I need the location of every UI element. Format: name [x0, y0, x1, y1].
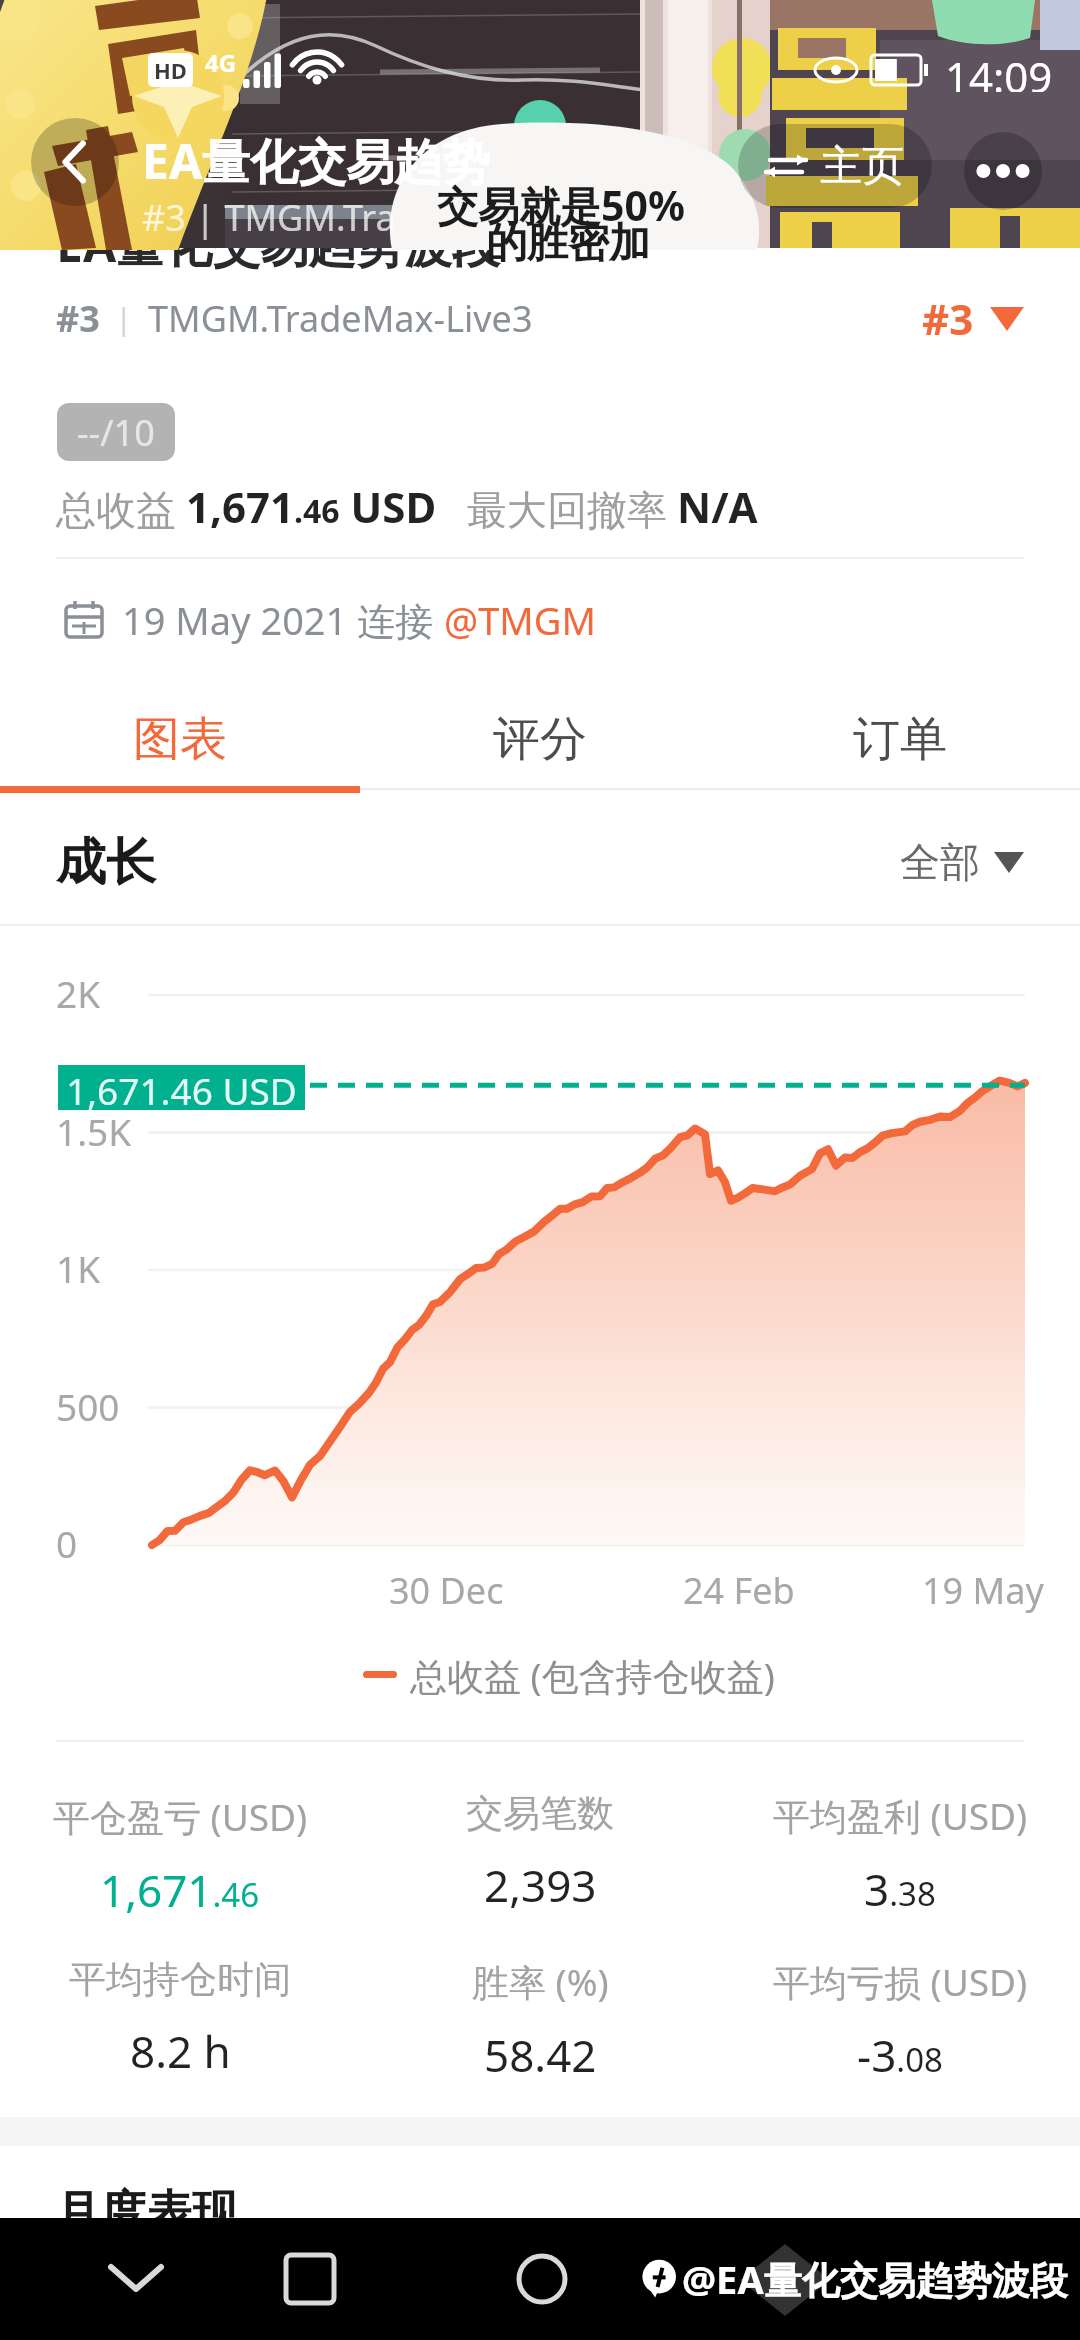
staticText: 平仓盈亏 (USD): [53, 1791, 308, 1842]
staticText: 平均持仓时间: [69, 1956, 291, 2003]
staticText: 2,393: [484, 1855, 597, 1915]
staticText: 平均盈利 (USD): [773, 1790, 1028, 1841]
staticText: 0: [56, 1518, 78, 1568]
staticText: 主页: [820, 140, 904, 193]
staticText: 30 Dec: [389, 1566, 504, 1615]
staticText: --/10: [77, 408, 155, 457]
staticText: N/A: [677, 478, 758, 535]
staticText: #3: [56, 294, 100, 343]
staticText: 3.38: [864, 1859, 936, 1919]
button[interactable]: #3: [922, 290, 1024, 347]
button[interactable]: Home: [502, 2218, 582, 2340]
staticText: 19 May 2021 连接: [122, 594, 444, 646]
staticText: 的胜密加: [486, 218, 650, 270]
staticText: 总收益 (包含持仓收益): [410, 1650, 775, 1698]
staticText: 8.2 h: [130, 2021, 231, 2081]
button[interactable]: 全部: [900, 837, 1024, 887]
staticText: 成长: [56, 831, 156, 894]
staticText: 图表: [133, 710, 227, 769]
staticText: 1.5K: [56, 1106, 132, 1156]
button[interactable]: @TMGM: [444, 594, 596, 646]
staticText: 总收益: [56, 485, 176, 535]
staticText: 最大回撤率: [467, 485, 667, 535]
staticText: @EA量化交易趋势波段: [682, 2253, 1068, 2305]
staticText: 1,671.46 USD: [186, 478, 437, 535]
staticText: TMGM.TradeMax-Live3: [148, 294, 533, 343]
button[interactable]: 订单: [720, 689, 1080, 789]
button[interactable]: --/10: [57, 403, 175, 461]
staticText: -3.08: [857, 2025, 943, 2085]
staticText: 月度表现: [54, 2184, 238, 2242]
staticText: HD: [154, 55, 187, 85]
button[interactable]: Back: [96, 2218, 176, 2340]
staticText: |: [100, 298, 148, 339]
button[interactable]: Back: [31, 118, 119, 206]
staticText: 24 Feb: [683, 1566, 795, 1615]
staticText: 全部: [900, 837, 980, 887]
staticText: 1,671.46 USD: [66, 1065, 297, 1110]
staticText: 交易笔数: [466, 1790, 614, 1837]
staticText: 19 May: [922, 1566, 1044, 1615]
staticText: 2K: [56, 968, 101, 1018]
staticText: EA量化交易趋势波段: [56, 211, 501, 277]
button[interactable]: 主页: [766, 124, 904, 208]
button[interactable]: Recent apps: [270, 2218, 350, 2340]
staticText: #3 | TMGM.Tra: [142, 193, 396, 242]
staticText: 14:09: [945, 48, 1053, 92]
staticText: 500: [56, 1381, 120, 1431]
button[interactable]: 评分: [360, 689, 720, 789]
button[interactable]: 图表: [0, 689, 360, 789]
staticText: 平均亏损 (USD): [773, 1956, 1028, 2007]
staticText: 交易就是50%: [437, 177, 685, 233]
staticText: EA量化交易趋势: [142, 128, 491, 194]
staticText: 评分: [493, 710, 587, 769]
staticText: 1K: [56, 1243, 101, 1293]
staticText: 订单: [853, 710, 947, 769]
staticText: 胜率 (%): [472, 1956, 609, 2007]
staticText: #3: [922, 290, 974, 347]
staticText: 58.42: [484, 2025, 597, 2085]
button[interactable]: More options: [964, 132, 1042, 210]
staticText: 1,671.46: [100, 1860, 260, 1920]
staticText: 4G: [205, 46, 237, 79]
